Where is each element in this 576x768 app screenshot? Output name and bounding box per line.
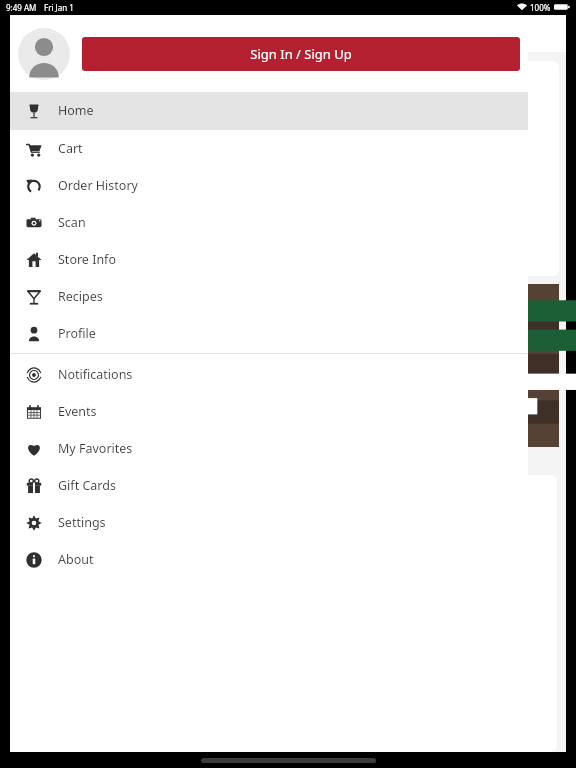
staticText: Cart: [58, 140, 83, 157]
button[interactable]: Notifications: [10, 356, 528, 393]
staticText: STAR: [20, 453, 52, 471]
button[interactable]: Gift Cards: [10, 467, 528, 504]
staticText: Sign In / Sign Up: [250, 45, 352, 63]
staticText: Recipes: [58, 288, 103, 305]
staticText: Gift Cards: [58, 477, 116, 494]
button[interactable]: Profile avatar: [18, 28, 70, 80]
staticText: About: [58, 551, 94, 568]
staticText: 100%: [530, 2, 551, 13]
staticText: Events: [58, 403, 97, 420]
staticText: Order History: [58, 177, 138, 194]
staticText: Scan: [58, 214, 86, 231]
button[interactable]: Cart: [10, 130, 528, 167]
staticText: My Favorites: [58, 440, 133, 457]
button[interactable]: Store Info: [10, 241, 528, 278]
staticText: Fri Jan 1: [44, 2, 74, 13]
staticText: Settings: [58, 514, 106, 531]
staticText: Profile: [58, 325, 96, 342]
button[interactable]: Settings: [10, 504, 528, 541]
button[interactable]: Order History: [10, 167, 528, 204]
button[interactable]: My Favorites: [10, 430, 528, 467]
button[interactable]: Sign In / Sign Up: [82, 37, 520, 71]
button[interactable]: Events: [10, 393, 528, 430]
staticText: Notifications: [58, 366, 133, 383]
button[interactable]: Recipes: [10, 278, 528, 315]
staticText: 9:49 AM: [6, 2, 37, 13]
button[interactable]: Home: [10, 92, 528, 129]
button[interactable]: Open navigation menu: [20, 21, 46, 47]
staticText: Home: [58, 102, 94, 119]
button[interactable]: About: [10, 541, 528, 578]
button[interactable]: Profile: [10, 315, 528, 352]
staticText: Store Info: [58, 251, 116, 268]
button[interactable]: Scan: [10, 204, 528, 241]
